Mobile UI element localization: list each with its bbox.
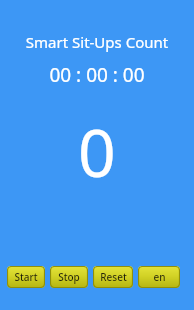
staticText: en <box>153 270 166 284</box>
staticText: Stop <box>58 270 80 284</box>
button[interactable]: Stop <box>50 266 88 288</box>
staticText: 00 : 00 : 00 <box>0 62 194 88</box>
staticText: 0 <box>0 106 194 196</box>
button[interactable]: Reset <box>93 266 133 288</box>
staticText: Smart Sit-Ups Count <box>0 32 194 52</box>
button[interactable]: Start <box>7 266 45 288</box>
staticText: Start <box>14 270 38 284</box>
button[interactable]: Change language <box>138 266 180 288</box>
staticText: Reset <box>100 270 127 284</box>
